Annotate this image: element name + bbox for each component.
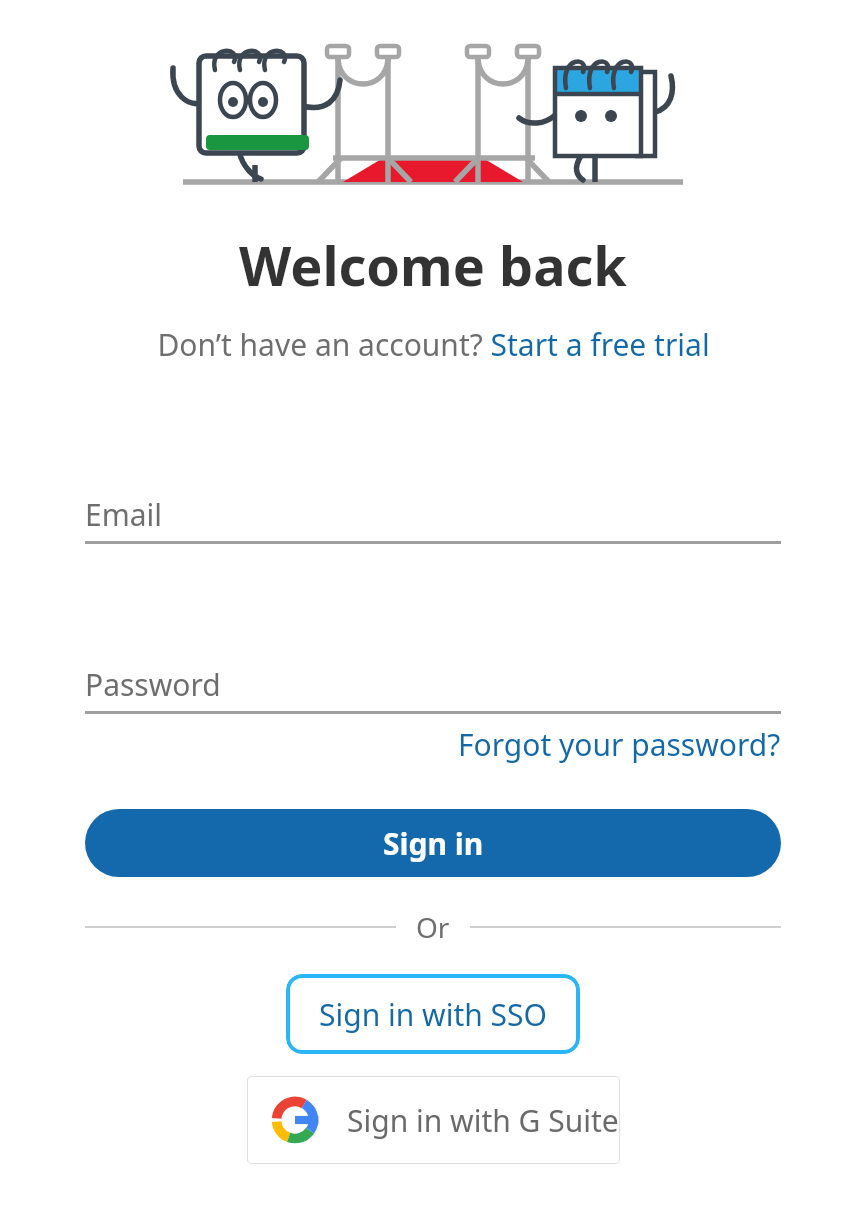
button[interactable]: Forgot your password? — [458, 724, 781, 765]
staticText: Password — [85, 664, 221, 705]
button[interactable]: Email — [85, 487, 781, 541]
staticText: Or — [416, 908, 450, 946]
staticText: Welcome back — [239, 228, 627, 302]
button[interactable]: Sign in with G Suite — [247, 1076, 620, 1164]
other: Welcome illustration — [183, 30, 683, 192]
button[interactable]: Sign in with SSO — [286, 974, 580, 1054]
button[interactable]: Sign in — [85, 809, 781, 877]
staticText: Sign in with G Suite — [347, 1100, 619, 1141]
staticText: Forgot your password? — [458, 724, 781, 765]
staticText: Email — [85, 494, 163, 535]
button[interactable]: Don’t have an account? Start a free tria… — [157, 324, 710, 365]
staticText: Sign in with SSO — [319, 994, 547, 1035]
staticText: Sign in — [383, 823, 484, 864]
button[interactable]: Password — [85, 657, 781, 711]
